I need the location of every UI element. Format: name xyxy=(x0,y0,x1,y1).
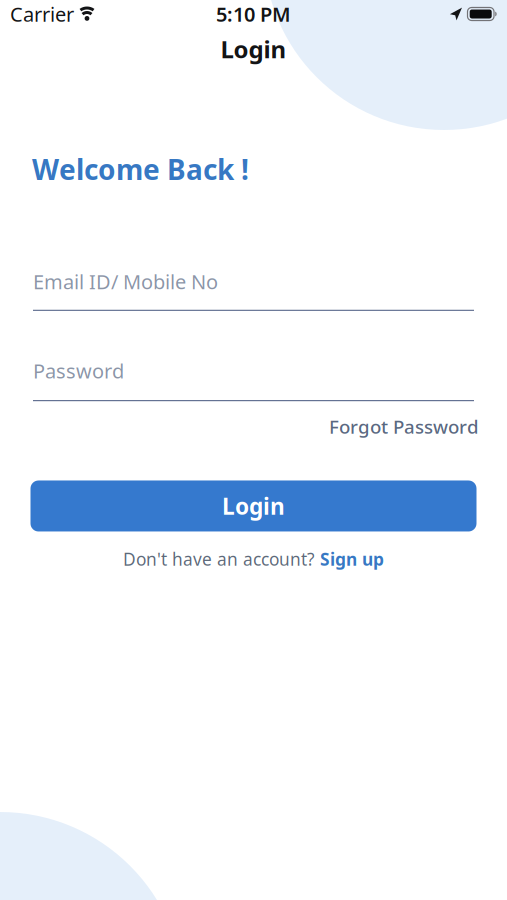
staticText: 5:10 PM xyxy=(216,1,291,27)
button[interactable]: Sign up xyxy=(320,547,384,570)
button[interactable]: Forgot Password xyxy=(329,414,479,439)
staticText: Carrier xyxy=(10,1,74,27)
staticText: Welcome Back ! xyxy=(32,150,249,188)
button[interactable]: Email ID/ Mobile No xyxy=(0,268,507,311)
staticText: Login xyxy=(222,491,285,521)
staticText: Login xyxy=(220,33,286,65)
staticText: Forgot Password xyxy=(329,414,479,439)
staticText: Password xyxy=(33,357,124,384)
button[interactable]: Password xyxy=(0,357,507,401)
staticText: Sign up xyxy=(320,547,384,570)
staticText: Email ID/ Mobile No xyxy=(33,268,218,295)
button[interactable]: Login xyxy=(30,480,476,531)
staticText: Don't have an account? xyxy=(123,547,320,570)
